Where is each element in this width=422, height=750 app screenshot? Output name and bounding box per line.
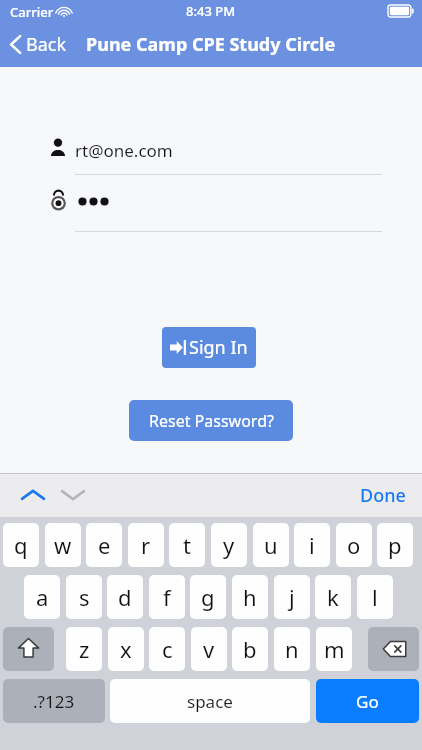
- button[interactable]: n: [274, 627, 310, 671]
- staticText: Pune Camp CPE Study Circle: [86, 32, 336, 57]
- button[interactable]: Sign In: [162, 327, 256, 368]
- staticText: g: [201, 582, 215, 612]
- button[interactable]: y: [211, 523, 247, 567]
- staticText: v: [203, 634, 215, 664]
- staticText: m: [324, 634, 345, 664]
- button[interactable]: s: [66, 575, 102, 619]
- staticText: n: [285, 634, 299, 664]
- button[interactable]: m: [316, 627, 352, 671]
- button[interactable]: o: [336, 523, 372, 567]
- button[interactable]: c: [149, 627, 185, 671]
- staticText: e: [98, 530, 111, 560]
- staticText: q: [14, 530, 28, 560]
- staticText: s: [79, 582, 90, 612]
- button[interactable]: p: [377, 523, 413, 567]
- button[interactable]: b: [232, 627, 268, 671]
- staticText: y: [223, 530, 235, 560]
- staticText: Done: [360, 483, 406, 508]
- staticText: i: [309, 530, 315, 560]
- button[interactable]: Go: [316, 679, 419, 723]
- button[interactable]: f: [149, 575, 185, 619]
- button[interactable]: h: [232, 575, 268, 619]
- button[interactable]: j: [274, 575, 310, 619]
- button[interactable]: Backspace: [368, 627, 419, 671]
- staticText: 8:43 PM: [186, 2, 236, 20]
- button[interactable]: Done: [354, 479, 412, 512]
- button[interactable]: .?123: [3, 679, 105, 723]
- button[interactable]: t: [169, 523, 205, 567]
- button[interactable]: [77, 196, 110, 207]
- staticText: Carrier: [10, 3, 54, 21]
- staticText: p: [388, 530, 402, 560]
- staticText: l: [372, 582, 378, 612]
- button[interactable]: l: [357, 575, 393, 619]
- staticText: h: [243, 582, 257, 612]
- button[interactable]: v: [191, 627, 227, 671]
- staticText: f: [163, 582, 171, 612]
- staticText: r: [141, 530, 151, 560]
- staticText: j: [289, 582, 295, 612]
- staticText: Go: [356, 690, 379, 713]
- button[interactable]: e: [86, 523, 122, 567]
- button[interactable]: Shift: [3, 627, 54, 671]
- staticText: Reset Password?: [149, 410, 274, 432]
- staticText: d: [118, 582, 132, 612]
- button[interactable]: d: [107, 575, 143, 619]
- staticText: k: [327, 582, 339, 612]
- button[interactable]: k: [315, 575, 351, 619]
- staticText: a: [36, 582, 49, 612]
- staticText: w: [54, 530, 72, 560]
- staticText: space: [187, 690, 233, 713]
- staticText: u: [264, 530, 278, 560]
- button[interactable]: q: [3, 523, 39, 567]
- staticText: x: [120, 634, 132, 664]
- button[interactable]: Next field: [56, 482, 90, 508]
- staticText: b: [243, 634, 257, 664]
- button[interactable]: i: [294, 523, 330, 567]
- button[interactable]: x: [108, 627, 144, 671]
- staticText: o: [347, 530, 361, 560]
- button[interactable]: space: [110, 679, 310, 723]
- button[interactable]: Previous field: [16, 482, 50, 508]
- button[interactable]: r: [128, 523, 164, 567]
- staticText: Sign In: [189, 335, 248, 360]
- button[interactable]: g: [190, 575, 226, 619]
- button[interactable]: w: [45, 523, 81, 567]
- button[interactable]: z: [66, 627, 102, 671]
- button[interactable]: Reset Password?: [129, 400, 293, 441]
- button[interactable]: Back: [6, 28, 71, 61]
- staticText: c: [162, 634, 173, 664]
- button[interactable]: a: [24, 575, 60, 619]
- button[interactable]: rt@one.com: [75, 139, 173, 162]
- staticText: .?123: [33, 690, 75, 713]
- staticText: t: [183, 530, 191, 560]
- button[interactable]: u: [253, 523, 289, 567]
- staticText: z: [79, 634, 90, 664]
- staticText: Back: [26, 32, 67, 57]
